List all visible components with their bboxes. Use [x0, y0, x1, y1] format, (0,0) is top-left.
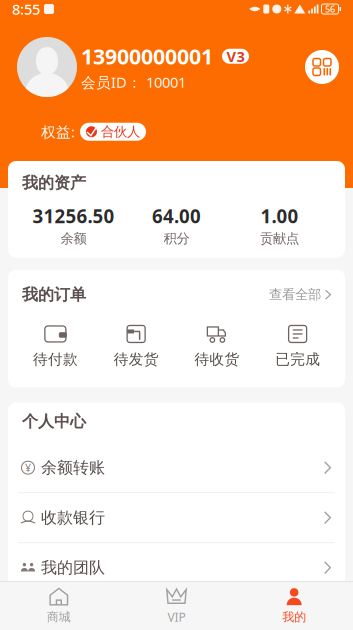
staticText: 我的 — [282, 610, 306, 624]
staticText: 56 — [325, 3, 335, 15]
staticText: 贡献点 — [260, 230, 299, 247]
button[interactable]: 我的 — [235, 581, 353, 630]
button[interactable]: 查看全部 — [269, 286, 331, 303]
staticText: 商城 — [47, 610, 71, 624]
button[interactable]: 我的团队 — [8, 543, 345, 592]
button[interactable]: 扫一扫 — [305, 50, 339, 84]
button[interactable]: 待收货 — [176, 324, 257, 368]
staticText: 余额 — [60, 230, 86, 247]
button[interactable]: 待发货 — [96, 324, 177, 368]
staticText: 待收货 — [194, 350, 239, 368]
staticText: 我的团队 — [41, 558, 105, 577]
staticText: 已完成 — [275, 350, 320, 368]
staticText: 我的订单 — [22, 285, 86, 304]
staticText: 收款银行 — [41, 508, 105, 527]
staticText: 余额转账 — [41, 458, 105, 477]
staticText: VIP — [167, 609, 185, 625]
button[interactable]: VIP — [118, 580, 235, 630]
staticText: 合伙人 — [101, 124, 140, 140]
button[interactable]: ¥ — [8, 443, 345, 493]
staticText: 1.00 — [260, 204, 298, 228]
staticText: 会员ID： 10001 — [81, 72, 186, 92]
button[interactable]: 待付款 — [15, 324, 96, 368]
staticText: 个人中心 — [22, 411, 86, 431]
staticText: 我的资产 — [22, 173, 86, 193]
button[interactable]: 已完成 — [257, 324, 338, 368]
staticText: V3 — [226, 46, 244, 66]
staticText: 13900000001 — [81, 42, 213, 70]
staticText: 31256.50 — [32, 204, 114, 228]
staticText: 待付款 — [33, 350, 78, 368]
staticText: ¥ — [25, 461, 31, 475]
button[interactable]: 商城 — [0, 581, 118, 630]
staticText: 8:55 — [12, 0, 40, 19]
staticText: 待发货 — [114, 350, 159, 368]
staticText: 查看全部 — [269, 286, 321, 303]
staticText: 64.00 — [152, 204, 201, 228]
staticText: 权益: — [41, 122, 75, 141]
staticText: 积分 — [163, 230, 189, 247]
button[interactable]: 收款银行 — [8, 493, 345, 543]
